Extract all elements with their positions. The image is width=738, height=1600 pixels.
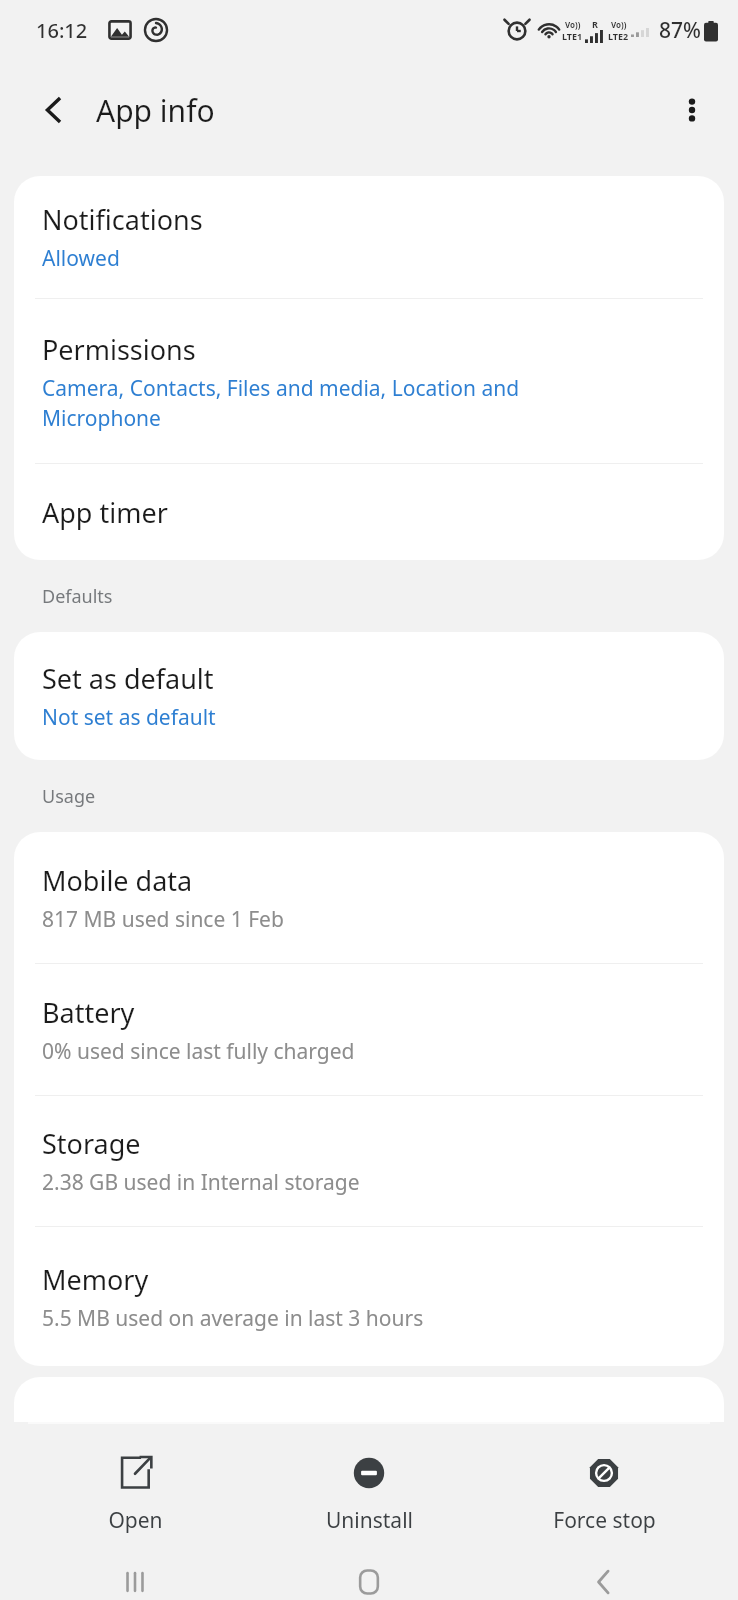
staticText: Allowed: [42, 244, 120, 273]
button[interactable]: Battery: [14, 964, 724, 1095]
staticText: Vo)): [565, 19, 581, 30]
button[interactable]: Open: [35, 1424, 235, 1564]
staticText: App info: [96, 90, 215, 131]
button[interactable]: Recents: [35, 1564, 235, 1600]
staticText: Camera, Contacts, Files and media, Locat…: [42, 374, 520, 432]
staticText: Not set as default: [42, 703, 216, 732]
staticText: Storage: [42, 1125, 141, 1162]
button[interactable]: Notifications: [14, 176, 724, 298]
staticText: 16:12: [36, 17, 88, 44]
staticText: Notifications: [42, 201, 203, 238]
staticText: Uninstall: [326, 1506, 413, 1535]
staticText: Mobile data: [42, 862, 193, 899]
staticText: Open: [108, 1506, 163, 1535]
button[interactable]: Back: [504, 1564, 704, 1600]
staticText: 87%: [659, 16, 701, 45]
staticText: 2.38 GB used in Internal storage: [42, 1168, 360, 1197]
button[interactable]: Memory: [14, 1227, 724, 1366]
staticText: App timer: [42, 494, 168, 531]
staticText: Usage: [42, 784, 96, 809]
staticText: Force stop: [553, 1506, 656, 1535]
staticText: Battery: [42, 994, 135, 1031]
staticText: 817 MB used since 1 Feb: [42, 905, 284, 934]
staticText: LTE2: [608, 30, 629, 42]
button[interactable]: More options: [664, 82, 720, 138]
staticText: R: [592, 18, 598, 30]
button[interactable]: Force stop: [504, 1424, 704, 1564]
staticText: Memory: [42, 1261, 149, 1298]
button[interactable]: Set as default: [14, 632, 724, 760]
button[interactable]: Back: [26, 82, 82, 138]
button[interactable]: Mobile data: [14, 832, 724, 963]
staticText: Set as default: [42, 660, 214, 697]
staticText: 5.5 MB used on average in last 3 hours: [42, 1304, 424, 1333]
button[interactable]: Home: [269, 1564, 469, 1600]
staticText: LTE1: [562, 30, 583, 42]
staticText: Vo)): [611, 19, 627, 30]
staticText: 0% used since last fully charged: [42, 1037, 355, 1066]
staticText: Defaults: [42, 584, 113, 609]
button[interactable]: Uninstall: [269, 1424, 469, 1564]
button[interactable]: Storage: [14, 1096, 724, 1226]
button[interactable]: App timer: [14, 464, 724, 560]
button[interactable]: Permissions: [14, 299, 724, 463]
staticText: Permissions: [42, 331, 196, 368]
